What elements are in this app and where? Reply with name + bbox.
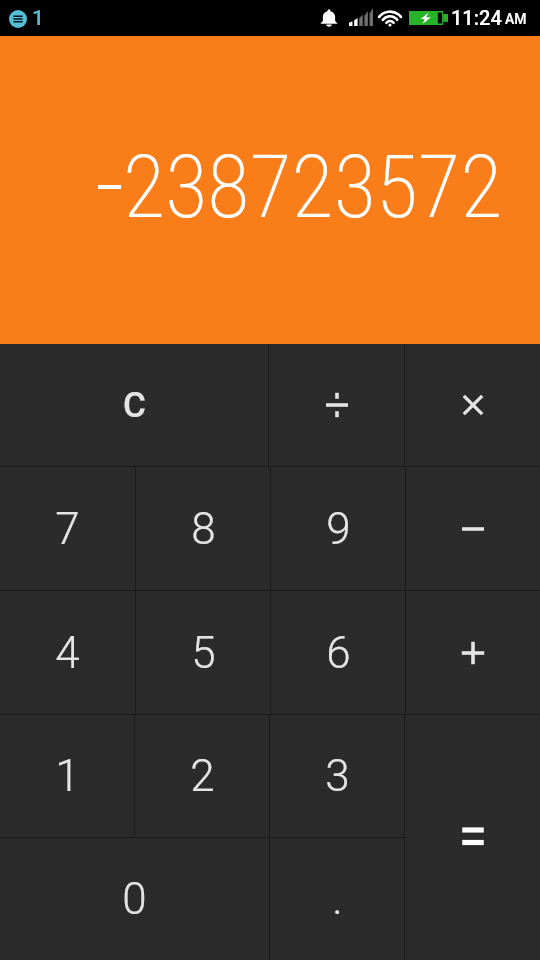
button[interactable]: 6 (271, 591, 405, 714)
button[interactable]: 5 (136, 591, 270, 714)
button[interactable]: . (270, 838, 404, 960)
button[interactable]: 3 (270, 715, 404, 837)
button[interactable]: Divide (269, 344, 404, 466)
button[interactable]: 0 (0, 838, 269, 960)
button[interactable]: 9 (271, 467, 405, 590)
staticText: 1 (32, 6, 44, 31)
button[interactable]: Minus (406, 467, 540, 590)
staticText: 3 (325, 750, 350, 802)
button[interactable]: 2 (135, 715, 269, 837)
staticText: AM (505, 11, 527, 27)
staticText: 4 (55, 627, 80, 679)
staticText: 5 (191, 627, 216, 679)
staticText: 6 (326, 627, 351, 679)
staticText: 7 (55, 503, 80, 555)
button[interactable]: Plus (406, 591, 540, 714)
staticText: 8 (191, 503, 216, 555)
button[interactable]: 4 (0, 591, 135, 714)
button[interactable]: Multiply (405, 344, 540, 466)
button[interactable]: C (0, 344, 268, 466)
staticText: C (123, 385, 146, 426)
button[interactable]: 1 (0, 715, 134, 837)
button[interactable]: 8 (136, 467, 270, 590)
staticText: . (332, 873, 343, 925)
staticText: 2 (190, 750, 215, 802)
staticText: 1 (55, 750, 80, 802)
staticText: 11:24 (451, 6, 502, 29)
button[interactable]: 7 (0, 467, 135, 590)
staticText: 0 (122, 873, 147, 925)
other: Notifications (320, 9, 338, 27)
button[interactable]: Equals (405, 715, 540, 960)
staticText: 238723572 (123, 136, 503, 238)
staticText: 9 (326, 503, 351, 555)
